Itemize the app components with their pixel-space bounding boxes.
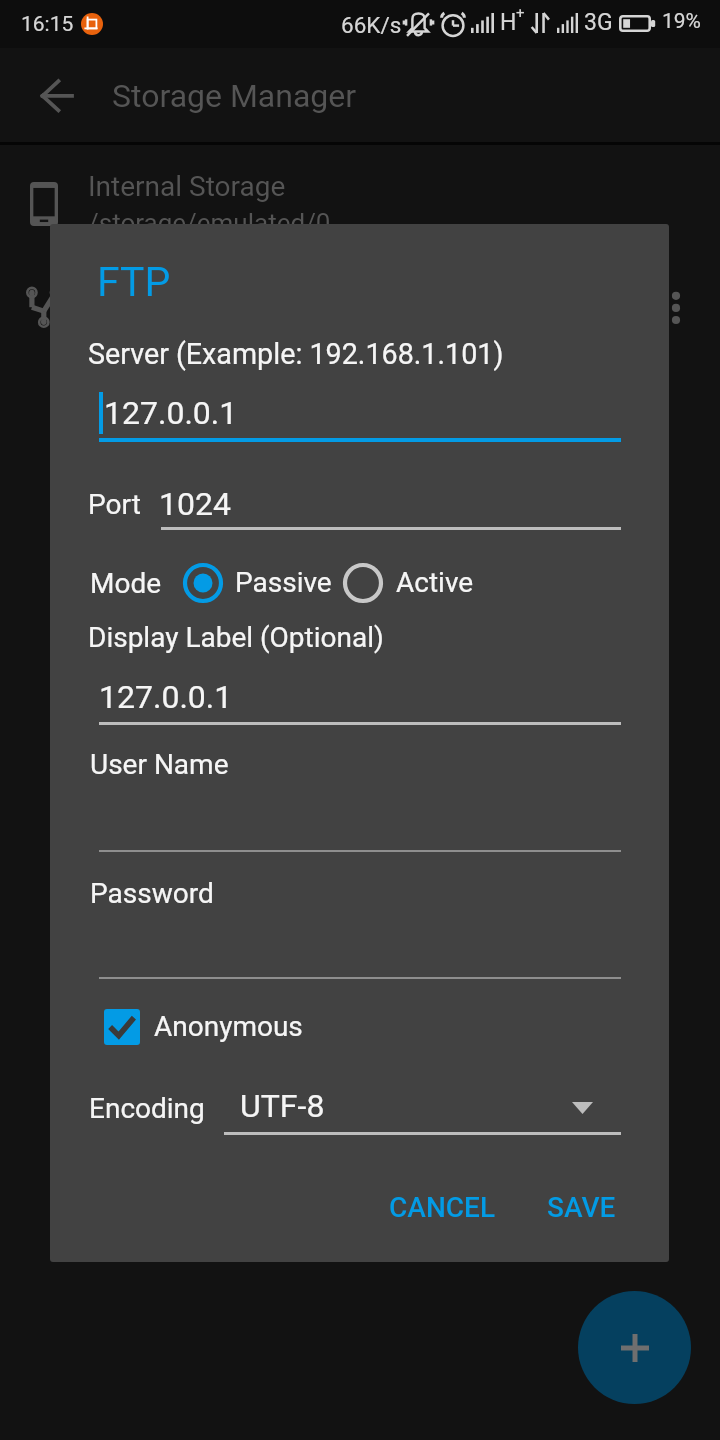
button[interactable]: CANCEL [376, 1182, 508, 1232]
button[interactable]: SAVE [529, 1182, 633, 1232]
staticText: 127.0.0.1 [104, 394, 238, 432]
button[interactable]: Back [28, 72, 86, 120]
staticText: 3G [584, 9, 613, 36]
staticText: Passive [235, 566, 332, 599]
staticText: Mode [90, 567, 162, 600]
staticText: Display Label (Optional) [88, 621, 384, 654]
staticText: 127.0.0.1 [99, 678, 233, 716]
staticText: 19% [662, 9, 701, 34]
staticText: /storage/emulated/0 [88, 208, 331, 238]
button[interactable]: Add [578, 1291, 691, 1404]
button[interactable]: Passive [180, 558, 380, 608]
staticText: User Name [90, 748, 229, 781]
staticText: Password [90, 877, 214, 910]
staticText: Anonymous [154, 1010, 303, 1043]
button[interactable] [0, 250, 720, 340]
staticText: Server (Example: 192.168.1.101) [88, 337, 504, 371]
button[interactable] [0, 155, 720, 243]
staticText: + [516, 4, 525, 22]
staticText: Active [396, 566, 474, 599]
staticText: 1024 [159, 485, 231, 523]
staticText: 66K/s [341, 12, 402, 38]
staticText: Encoding [89, 1092, 205, 1125]
other: Network [22, 284, 70, 332]
staticText: H [500, 9, 517, 36]
button[interactable] [224, 1079, 621, 1137]
staticText: FTP [97, 258, 171, 306]
staticText: 16:15 [21, 12, 74, 37]
button[interactable]: Active [340, 558, 525, 608]
button[interactable]: More options [656, 276, 696, 328]
staticText: CANCEL [389, 1191, 496, 1224]
button[interactable] [90, 1002, 360, 1054]
staticText: Internal Storage [88, 170, 286, 203]
staticText: UTF-8 [240, 1087, 325, 1125]
staticText: Port [88, 488, 141, 521]
staticText: Storage Manager [112, 77, 357, 115]
staticText: SAVE [547, 1191, 616, 1224]
